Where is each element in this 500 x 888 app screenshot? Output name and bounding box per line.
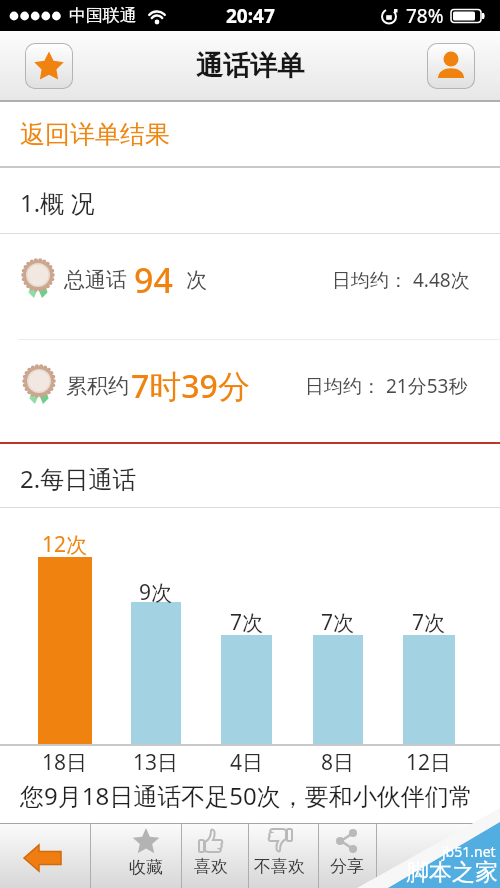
- staticText: 脚本之家: [406, 858, 498, 887]
- staticText: 18日: [42, 748, 88, 777]
- staticText: 不喜欢: [254, 856, 305, 877]
- staticText: jb51.net: [442, 842, 496, 861]
- staticText: 总通话: [64, 267, 127, 293]
- staticText: 中国联通: [69, 5, 137, 26]
- button[interactable]: [0, 823, 90, 888]
- button[interactable]: 返回详单结果: [0, 102, 500, 166]
- staticText: 分享: [330, 856, 364, 877]
- staticText: 您9月18日通话不足50次，要和小伙伴们常: [20, 779, 473, 812]
- staticText: 喜欢: [194, 856, 228, 877]
- staticText: 7次: [321, 608, 355, 637]
- staticText: 1.概 况: [20, 186, 95, 219]
- staticText: 7次: [230, 608, 264, 637]
- staticText: 78%: [406, 3, 444, 29]
- staticText: 4日: [230, 748, 264, 777]
- staticText: 9次: [139, 578, 173, 607]
- staticText: 次: [186, 267, 207, 293]
- button[interactable]: 不喜欢: [249, 823, 318, 888]
- staticText: 20:47: [226, 3, 275, 29]
- staticText: 累积约: [66, 373, 129, 399]
- staticText: 收藏: [129, 857, 163, 878]
- staticText: 13日: [133, 748, 179, 777]
- staticText: 日均约： 21分53秒: [305, 373, 468, 399]
- staticText: 返回详单结果: [20, 119, 170, 150]
- staticText: 通话详单: [196, 49, 304, 83]
- button[interactable]: [25, 43, 73, 89]
- staticText: 7次: [412, 608, 446, 637]
- staticText: 12日: [406, 748, 452, 777]
- staticText: 日均约： 4.48次: [332, 267, 470, 293]
- button[interactable]: 分享: [319, 823, 376, 888]
- staticText: 2.每日通话: [20, 462, 137, 495]
- staticText: 8日: [321, 748, 355, 777]
- button[interactable]: 喜欢: [182, 823, 248, 888]
- button[interactable]: 收藏: [91, 823, 181, 888]
- staticText: 94: [134, 257, 173, 303]
- button[interactable]: [427, 43, 475, 89]
- staticText: 12次: [42, 530, 88, 559]
- staticText: 7时39分: [131, 364, 250, 408]
